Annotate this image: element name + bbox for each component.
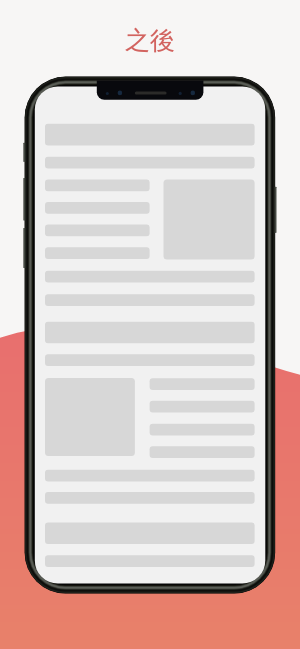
staticText: 之後 (125, 25, 175, 56)
